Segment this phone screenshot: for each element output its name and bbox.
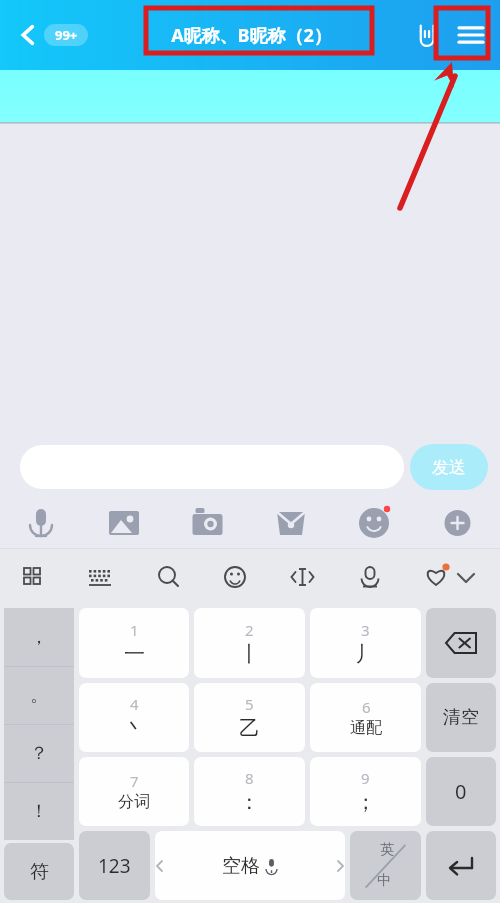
button[interactable]: Delete — [426, 608, 496, 678]
staticText: ： — [239, 789, 260, 815]
button[interactable]: 6 — [310, 683, 421, 752]
button[interactable]: 。 — [4, 667, 74, 724]
button[interactable]: 发送 — [410, 444, 488, 490]
staticText: 空格 — [222, 854, 260, 878]
staticText: 99+ — [55, 26, 78, 44]
staticText: 7 — [130, 771, 139, 791]
button[interactable]: More — [417, 499, 500, 549]
button[interactable]: 8 — [194, 757, 305, 826]
button[interactable]: 5 — [194, 683, 305, 752]
staticText: 2 — [245, 620, 254, 640]
button[interactable]: Gesture — [410, 18, 444, 52]
button[interactable]: Cursor — [248, 549, 311, 605]
button[interactable]: 空格 — [155, 831, 345, 900]
button[interactable]: Gallery — [84, 499, 168, 549]
staticText: 乙 — [239, 715, 260, 741]
button[interactable]: Mail — [251, 499, 334, 549]
staticText: 0 — [455, 778, 467, 805]
button[interactable]: 123 — [79, 831, 150, 900]
button[interactable]: 7 — [79, 757, 189, 826]
button[interactable]: Voice — [0, 499, 84, 549]
staticText: 123 — [98, 853, 131, 879]
staticText: 分词 — [118, 792, 150, 812]
button[interactable]: ， — [4, 608, 74, 666]
button[interactable]: 4 — [79, 683, 189, 752]
staticText: ； — [355, 789, 376, 815]
button[interactable]: Favorites — [374, 549, 437, 605]
button[interactable]: Apps — [0, 549, 62, 605]
staticText: 丨 — [239, 641, 260, 667]
staticText: 丿 — [355, 641, 376, 667]
staticText: 6 — [362, 697, 371, 717]
button[interactable]: Switch language — [350, 831, 421, 900]
button[interactable]: Back, 99+ unread — [12, 16, 94, 54]
button[interactable]: Voice input — [311, 549, 374, 605]
staticText: 8 — [245, 768, 254, 788]
staticText: 4 — [130, 694, 139, 714]
staticText: 一 — [124, 641, 145, 667]
staticText: 中 — [377, 872, 391, 890]
button[interactable]: ？ — [4, 725, 74, 782]
staticText: ， — [30, 626, 48, 649]
button[interactable]: 0 — [426, 757, 496, 826]
button[interactable]: Hide keyboard — [437, 549, 500, 605]
staticText: 英 — [380, 841, 394, 859]
button[interactable]: 2 — [194, 608, 305, 678]
button[interactable]: Search — [124, 549, 186, 605]
button[interactable] — [20, 445, 404, 489]
button[interactable]: 9 — [310, 757, 421, 826]
button[interactable]: 3 — [310, 608, 421, 678]
staticText: 丶 — [124, 715, 145, 741]
staticText: 。 — [30, 684, 48, 707]
button[interactable]: ！ — [4, 783, 74, 840]
staticText: 9 — [361, 768, 370, 788]
staticText: 清空 — [443, 706, 479, 729]
button[interactable]: Camera — [168, 499, 251, 549]
staticText: 符 — [30, 860, 49, 884]
button[interactable]: 1 — [79, 608, 189, 678]
button[interactable]: 符 — [4, 843, 74, 900]
button[interactable]: A昵称、B昵称（2） — [167, 19, 336, 52]
staticText: 5 — [245, 694, 254, 714]
button[interactable]: Keyboard layout — [62, 549, 124, 605]
staticText: 通配 — [350, 718, 382, 738]
staticText: 发送 — [432, 457, 466, 478]
staticText: 1 — [130, 620, 139, 640]
button[interactable]: Menu — [454, 18, 488, 52]
button[interactable]: Enter — [426, 831, 496, 900]
staticText: ！ — [30, 800, 48, 823]
button[interactable]: Emoji — [334, 499, 417, 549]
button[interactable]: 清空 — [426, 683, 496, 752]
staticText: 3 — [361, 620, 370, 640]
staticText: ？ — [30, 742, 48, 765]
button[interactable]: Emoji — [186, 549, 248, 605]
staticText: A昵称、B昵称（2） — [171, 23, 332, 48]
